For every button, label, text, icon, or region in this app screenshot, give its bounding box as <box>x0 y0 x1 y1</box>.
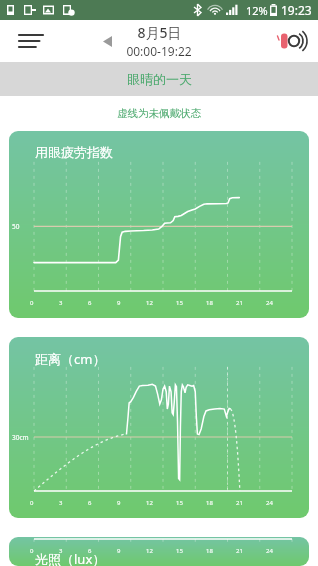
staticText: 30cm <box>12 433 29 442</box>
staticText: 18 <box>206 499 213 507</box>
button[interactable]: Menu <box>14 24 48 58</box>
staticText: 3 <box>59 299 63 307</box>
staticText: 00:00-19:22 <box>126 43 192 59</box>
staticText: 6 <box>88 299 92 307</box>
staticText: 0 <box>30 499 34 507</box>
button[interactable]: 距离（cm） <box>9 337 309 518</box>
staticText: 18 <box>206 547 213 555</box>
button[interactable]: Previous day <box>94 28 120 54</box>
staticText: 12% <box>246 3 268 18</box>
staticText: 18 <box>206 299 213 307</box>
staticText: 6 <box>88 547 92 555</box>
staticText: 9 <box>117 299 121 307</box>
staticText: 12 <box>146 299 153 307</box>
staticText: 12 <box>146 547 153 555</box>
button[interactable]: 光照（lux） <box>9 537 309 566</box>
button[interactable]: 用眼疲劳指数 <box>9 131 309 318</box>
staticText: 距离（cm） <box>35 350 106 368</box>
staticText: 虚线为未佩戴状态 <box>117 107 201 120</box>
staticText: 3 <box>59 499 63 507</box>
button[interactable]: Device connection <box>270 22 308 60</box>
staticText: 6 <box>88 499 92 507</box>
staticText: 50 <box>12 222 20 231</box>
staticText: 3 <box>59 547 63 555</box>
staticText: 15 <box>176 299 183 307</box>
staticText: 8月5日 <box>137 23 182 42</box>
staticText: 21 <box>236 499 243 507</box>
staticText: 19:23 <box>281 2 312 18</box>
staticText: 9 <box>117 499 121 507</box>
staticText: 光照（lux） <box>35 550 106 566</box>
staticText: 9 <box>117 547 121 555</box>
staticText: 0 <box>30 299 34 307</box>
staticText: 21 <box>236 299 243 307</box>
staticText: 15 <box>176 547 183 555</box>
staticText: 用眼疲劳指数 <box>35 144 113 160</box>
staticText: 24 <box>266 299 273 307</box>
staticText: 眼晴的一天 <box>127 71 192 87</box>
staticText: 15 <box>176 499 183 507</box>
staticText: 0 <box>30 547 34 555</box>
staticText: 21 <box>236 547 243 555</box>
staticText: 24 <box>266 499 273 507</box>
staticText: 24 <box>266 547 273 555</box>
staticText: 12 <box>146 499 153 507</box>
